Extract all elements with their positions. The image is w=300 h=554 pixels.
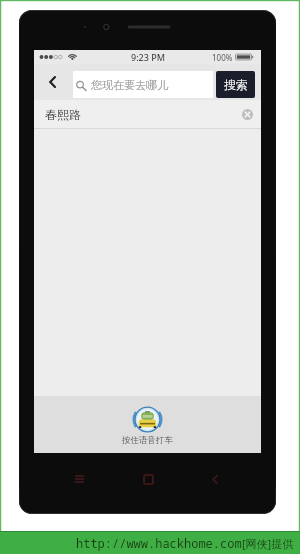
button[interactable]: Home xyxy=(135,466,161,492)
button[interactable]: 春熙路 xyxy=(34,100,261,129)
button[interactable]: 搜索 xyxy=(216,71,255,98)
button[interactable]: Back xyxy=(202,466,228,492)
button[interactable]: Clear xyxy=(242,109,253,120)
button[interactable]: Menu xyxy=(66,466,92,492)
staticText: 100% xyxy=(212,52,233,63)
staticText: 春熙路 xyxy=(45,107,81,122)
staticText: 搜索 xyxy=(224,77,248,92)
button[interactable]: Back xyxy=(39,64,66,100)
staticText: 按住语音打车 xyxy=(122,435,173,446)
staticText: [网侠]提供 xyxy=(242,536,294,551)
button[interactable]: Hold to hail a taxi by voice xyxy=(34,396,261,453)
button[interactable]: 您现在要去哪儿 xyxy=(73,71,213,98)
staticText: 9:23 PM xyxy=(131,51,165,63)
staticText: 您现在要去哪儿 xyxy=(91,78,168,92)
staticText: http://www.hackhome.com xyxy=(76,535,242,551)
